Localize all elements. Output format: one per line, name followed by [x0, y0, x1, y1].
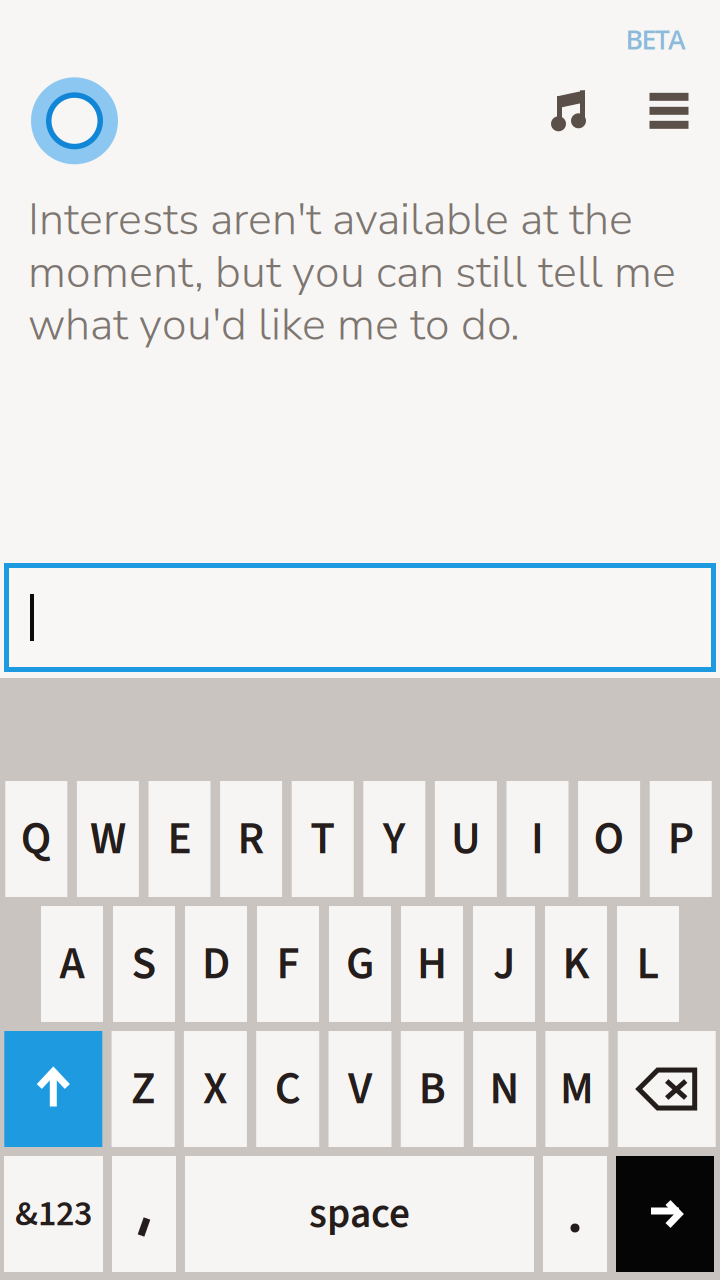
button[interactable]: B: [401, 1031, 464, 1147]
staticText: V: [348, 1057, 372, 1121]
staticText: M: [560, 1057, 594, 1121]
button[interactable]: H: [401, 906, 463, 1022]
button[interactable]: G: [329, 906, 391, 1022]
button[interactable]: C: [256, 1031, 319, 1147]
button[interactable]: K: [545, 906, 607, 1022]
button[interactable]: P: [650, 781, 712, 897]
staticText: Q: [21, 807, 52, 871]
button[interactable]: R: [220, 781, 282, 897]
staticText: B: [419, 1057, 446, 1121]
button[interactable]: [0, 563, 720, 672]
button[interactable]: &123: [4, 1156, 103, 1272]
button[interactable]: Period: [543, 1156, 607, 1272]
staticText: T: [310, 807, 335, 871]
button[interactable]: O: [578, 781, 640, 897]
staticText: L: [636, 932, 659, 996]
button[interactable]: L: [617, 906, 679, 1022]
staticText: J: [493, 932, 515, 996]
button[interactable]: X: [184, 1031, 247, 1147]
staticText: A: [59, 932, 84, 996]
button[interactable]: A: [41, 906, 103, 1022]
button[interactable]: I: [506, 781, 568, 897]
button[interactable]: Q: [5, 781, 67, 897]
button[interactable]: V: [328, 1031, 391, 1147]
button[interactable]: F: [257, 906, 319, 1022]
button[interactable]: Shift: [4, 1031, 102, 1147]
staticText: H: [417, 932, 447, 996]
staticText: S: [131, 932, 156, 996]
staticText: Interests aren't available at the moment…: [28, 193, 676, 351]
button[interactable]: Y: [363, 781, 425, 897]
button[interactable]: S: [113, 906, 175, 1022]
staticText: space: [309, 1185, 410, 1243]
staticText: G: [346, 932, 374, 996]
button[interactable]: J: [473, 906, 535, 1022]
button[interactable]: N: [473, 1031, 536, 1147]
staticText: O: [594, 807, 625, 871]
button[interactable]: T: [292, 781, 354, 897]
button[interactable]: space: [185, 1156, 534, 1272]
button[interactable]: E: [148, 781, 210, 897]
staticText: N: [490, 1057, 520, 1121]
button[interactable]: Comma: [112, 1156, 176, 1272]
staticText: Y: [383, 807, 406, 871]
staticText: P: [668, 807, 694, 871]
staticText: F: [276, 932, 299, 996]
button[interactable]: Backspace: [618, 1031, 716, 1147]
button[interactable]: Z: [112, 1031, 175, 1147]
button[interactable]: BETA: [625, 21, 686, 57]
staticText: X: [203, 1057, 228, 1121]
staticText: U: [451, 807, 481, 871]
staticText: E: [167, 807, 191, 871]
staticText: C: [275, 1057, 301, 1121]
button[interactable]: D: [185, 906, 247, 1022]
staticText: I: [531, 807, 544, 871]
button[interactable]: W: [77, 781, 139, 897]
button[interactable]: Enter: [616, 1156, 714, 1272]
button[interactable]: M: [545, 1031, 608, 1147]
button[interactable]: Menu: [641, 83, 697, 139]
staticText: BETA: [625, 21, 686, 57]
staticText: Z: [131, 1057, 155, 1121]
staticText: K: [562, 932, 589, 996]
staticText: R: [238, 807, 265, 871]
staticText: W: [90, 807, 126, 871]
staticText: &123: [15, 1188, 92, 1240]
staticText: D: [202, 932, 230, 996]
button[interactable]: U: [435, 781, 497, 897]
button[interactable]: Music: [540, 83, 596, 139]
